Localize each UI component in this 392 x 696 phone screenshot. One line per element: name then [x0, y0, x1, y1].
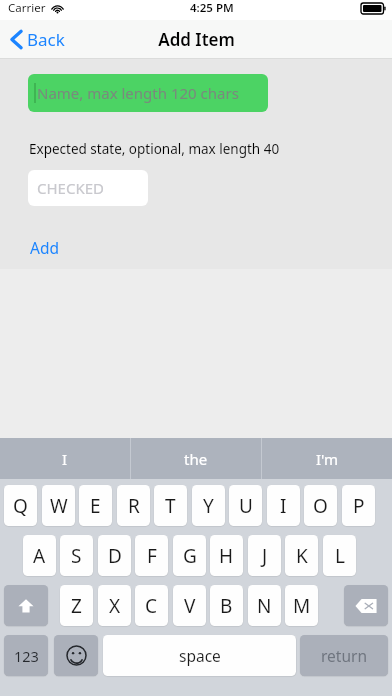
- staticText: Name, max length 120 chars: [37, 83, 239, 103]
- staticText: F: [147, 543, 157, 569]
- button[interactable]: O: [304, 485, 337, 526]
- staticText: A: [33, 543, 46, 569]
- button[interactable]: N: [248, 585, 281, 626]
- staticText: L: [335, 543, 345, 569]
- staticText: Expected state, optional, max length 40: [29, 140, 280, 158]
- button[interactable]: CHECKED: [28, 170, 148, 206]
- button[interactable]: Name, max length 120 chars: [28, 74, 268, 112]
- button[interactable]: space: [103, 635, 296, 676]
- button[interactable]: K: [285, 535, 318, 576]
- staticText: R: [128, 493, 140, 519]
- staticText: Add: [30, 237, 59, 258]
- staticText: 123: [14, 646, 39, 666]
- button[interactable]: return: [300, 635, 388, 676]
- button[interactable]: P: [342, 485, 375, 526]
- button[interactable]: F: [135, 535, 168, 576]
- button[interactable]: Q: [4, 485, 37, 526]
- staticText: 4:25 PM: [190, 0, 234, 16]
- button[interactable]: Y: [192, 485, 225, 526]
- staticText: E: [90, 493, 101, 519]
- staticText: CHECKED: [37, 178, 104, 198]
- staticText: V: [184, 593, 196, 619]
- staticText: U: [239, 493, 253, 519]
- button[interactable]: E: [79, 485, 112, 526]
- button[interactable]: T: [154, 485, 187, 526]
- staticText: B: [220, 593, 233, 619]
- staticText: Add Item: [158, 28, 235, 51]
- button[interactable]: V: [173, 585, 206, 626]
- button[interactable]: R: [117, 485, 150, 526]
- button[interactable]: I: [0, 438, 130, 479]
- staticText: H: [219, 543, 234, 569]
- staticText: P: [353, 493, 365, 519]
- button[interactable]: S: [60, 535, 93, 576]
- staticText: W: [50, 493, 68, 519]
- staticText: I: [280, 493, 287, 519]
- button[interactable]: J: [248, 535, 281, 576]
- button[interactable]: Emoji: [54, 635, 98, 676]
- button[interactable]: X: [98, 585, 131, 626]
- button[interactable]: 123: [4, 635, 48, 676]
- staticText: T: [165, 493, 176, 519]
- staticText: Z: [71, 593, 82, 619]
- button[interactable]: Add: [28, 234, 61, 261]
- staticText: K: [296, 543, 308, 569]
- staticText: N: [257, 593, 272, 619]
- button[interactable]: B: [210, 585, 243, 626]
- staticText: Back: [27, 28, 65, 51]
- button[interactable]: C: [135, 585, 168, 626]
- staticText: D: [108, 543, 122, 569]
- button[interactable]: W: [42, 485, 75, 526]
- button[interactable]: Delete: [344, 585, 388, 626]
- button[interactable]: M: [285, 585, 318, 626]
- staticText: S: [71, 543, 82, 569]
- staticText: space: [179, 645, 221, 666]
- button[interactable]: the: [131, 438, 261, 479]
- button[interactable]: A: [23, 535, 56, 576]
- staticText: I: [62, 449, 68, 469]
- button[interactable]: Back: [9, 24, 67, 55]
- button[interactable]: U: [229, 485, 262, 526]
- button[interactable]: Shift: [4, 585, 48, 626]
- staticText: G: [183, 543, 197, 569]
- staticText: Y: [203, 493, 214, 519]
- button[interactable]: H: [210, 535, 243, 576]
- staticText: Q: [13, 493, 28, 519]
- button[interactable]: G: [173, 535, 206, 576]
- staticText: J: [262, 543, 268, 569]
- staticText: M: [293, 593, 311, 619]
- button[interactable]: Z: [60, 585, 93, 626]
- button[interactable]: I'm: [262, 438, 392, 479]
- button[interactable]: L: [323, 535, 356, 576]
- staticText: Carrier: [8, 0, 46, 16]
- staticText: return: [321, 645, 367, 666]
- button[interactable]: D: [98, 535, 131, 576]
- staticText: X: [109, 593, 121, 619]
- staticText: O: [313, 493, 328, 519]
- staticText: I'm: [316, 449, 339, 469]
- staticText: the: [184, 449, 208, 469]
- button[interactable]: I: [267, 485, 300, 526]
- staticText: C: [145, 593, 158, 619]
